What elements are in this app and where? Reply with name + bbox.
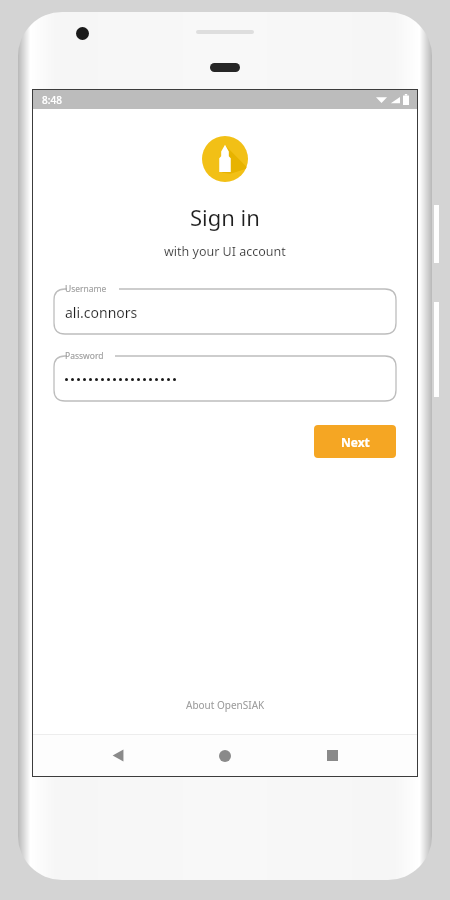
- staticText: Password: [65, 350, 104, 362]
- button[interactable]: Password: [54, 349, 396, 401]
- button[interactable]: About OpenSIAK: [176, 692, 275, 718]
- button[interactable]: Next: [314, 425, 396, 458]
- button[interactable]: Username: [54, 282, 396, 334]
- button[interactable]: Back: [96, 735, 140, 776]
- staticText: with your UI account: [164, 243, 286, 260]
- staticText: Sign in: [190, 202, 260, 232]
- staticText: Next: [341, 434, 370, 450]
- staticText: 8:48: [42, 93, 62, 107]
- button[interactable]: Recents: [310, 735, 354, 776]
- button[interactable]: Home: [203, 735, 247, 776]
- staticText: Username: [65, 283, 107, 295]
- staticText: ali.connors: [65, 303, 138, 322]
- staticText: About OpenSIAK: [186, 698, 265, 712]
